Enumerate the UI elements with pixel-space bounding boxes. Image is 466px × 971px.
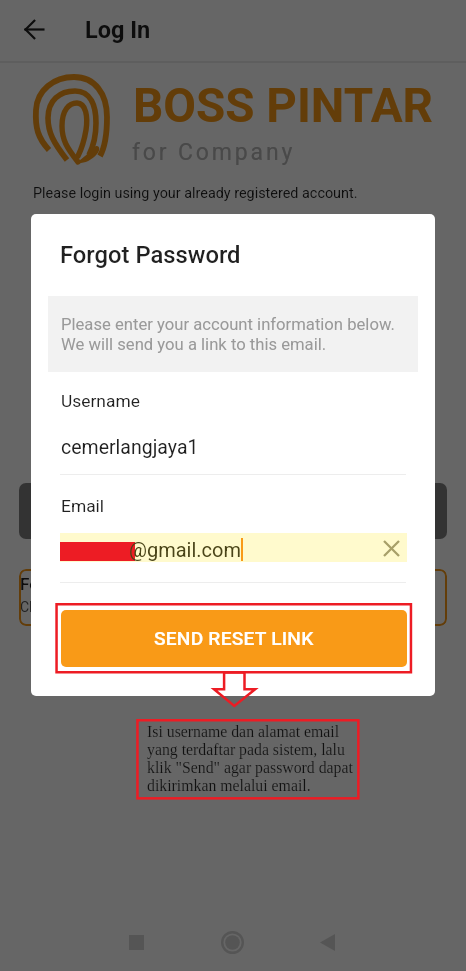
staticText: for Company [132,139,296,166]
button[interactable]: Home [221,931,244,954]
button[interactable]: LOGIN [19,483,447,539]
staticText: Log In [85,16,151,44]
staticText: @gmail.com [129,538,242,561]
button[interactable]: Clear [383,540,400,557]
button[interactable]: Back [10,5,58,53]
staticText: cemerlangjaya1 [61,436,199,459]
staticText: SEND RESET LINK [154,627,314,650]
button[interactable]: Forgot Password? [19,569,447,626]
staticText: Username [61,391,140,411]
staticText: Click here to reset your password [20,599,227,615]
staticText: Please enter your account information be… [61,315,395,335]
staticText: We will send you a link to this email. [61,335,327,355]
button[interactable]: SEND RESET LINK [61,610,407,667]
staticText: Forgot Password? [20,574,158,594]
staticText: Email [61,496,105,516]
button[interactable]: Back [320,934,335,951]
staticText: BOSS PINTAR [133,78,434,134]
staticText: Forgot Password [60,241,241,269]
staticText: Please login using your already register… [33,185,358,202]
staticText: Isi username dan alamat email yang terda… [147,723,353,795]
